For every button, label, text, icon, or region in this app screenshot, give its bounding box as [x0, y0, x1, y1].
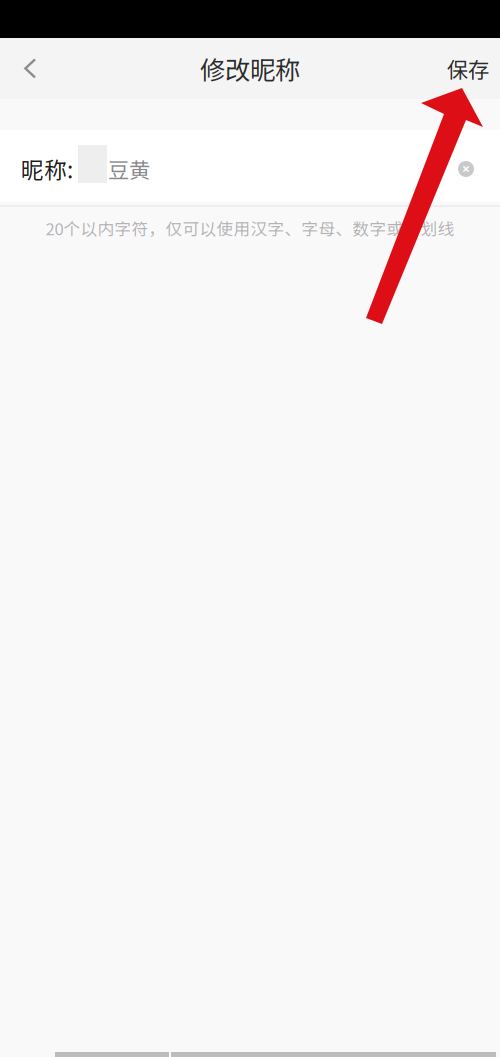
- button[interactable]: Clear text: [444, 139, 488, 193]
- staticText: 修改昵称: [200, 50, 300, 87]
- button[interactable]: 昵称:: [0, 130, 444, 202]
- staticText: 昵称:: [21, 152, 73, 185]
- staticText: 保存: [447, 53, 489, 84]
- staticText: 豆黄: [108, 154, 150, 184]
- staticText: 20个以内字符，仅可以使用汉字、字母、数字或下划线: [45, 216, 454, 240]
- button[interactable]: Back: [0, 38, 60, 99]
- button[interactable]: 保存: [423, 38, 500, 99]
